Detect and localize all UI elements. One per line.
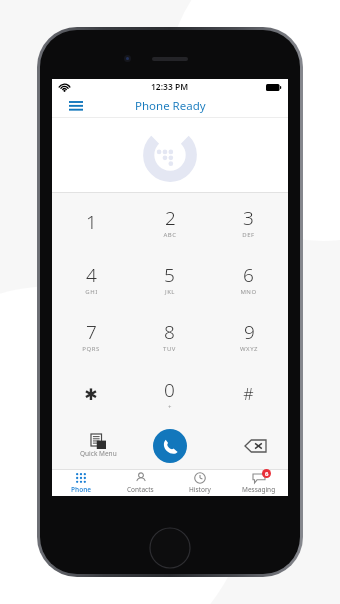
button[interactable]: 4 <box>52 250 130 307</box>
staticText: 4 <box>86 262 97 288</box>
button[interactable]: Phone <box>52 470 111 496</box>
staticText: Messaging <box>242 485 276 494</box>
button[interactable]: 1 <box>52 193 130 250</box>
staticText: 7 <box>86 319 97 345</box>
staticText: MNO <box>240 288 257 296</box>
staticText: ✱ <box>84 385 98 404</box>
button[interactable]: ✱ <box>52 365 130 423</box>
button[interactable]: 5 <box>130 250 209 307</box>
button[interactable]: History <box>170 470 229 496</box>
staticText: Quick Menu <box>80 449 117 458</box>
staticText: # <box>243 383 254 405</box>
staticText: 9 <box>244 319 255 345</box>
button[interactable]: Backspace <box>240 436 270 456</box>
staticText: + <box>168 403 172 411</box>
button[interactable]: 2 <box>130 193 209 250</box>
staticText: PQRS <box>82 345 100 353</box>
staticText: Contacts <box>127 485 154 494</box>
staticText: Phone Ready <box>135 98 206 114</box>
staticText: 8 <box>164 319 175 345</box>
staticText: GHI <box>85 288 98 296</box>
staticText: 6 <box>265 470 269 478</box>
staticText: 0 <box>164 377 175 403</box>
staticText: DEF <box>242 231 255 239</box>
button[interactable]: 3 <box>209 193 288 250</box>
staticText: 12:33 PM <box>151 81 189 93</box>
staticText: Phone <box>71 485 92 494</box>
button[interactable]: Quick Menu <box>70 434 126 458</box>
button[interactable]: Call <box>153 429 187 463</box>
staticText: JKL <box>165 288 175 296</box>
staticText: ABC <box>163 231 177 239</box>
button[interactable]: 7 <box>52 307 130 365</box>
button[interactable]: 0 <box>130 365 209 423</box>
button[interactable]: 6 <box>229 470 288 496</box>
staticText: 6 <box>243 262 254 288</box>
staticText: 3 <box>243 205 254 231</box>
staticText: 2 <box>165 205 176 231</box>
button[interactable]: 6 <box>209 250 288 307</box>
staticText: History <box>189 485 211 494</box>
staticText: 5 <box>164 262 175 288</box>
staticText: 1 <box>86 209 97 235</box>
staticText: TUV <box>163 345 176 353</box>
button[interactable]: Contacts <box>111 470 170 496</box>
button[interactable]: 8 <box>130 307 209 365</box>
staticText: WXYZ <box>240 345 258 353</box>
button[interactable]: 9 <box>209 307 288 365</box>
button[interactable]: # <box>209 365 288 423</box>
button[interactable]: Menu <box>66 96 86 116</box>
